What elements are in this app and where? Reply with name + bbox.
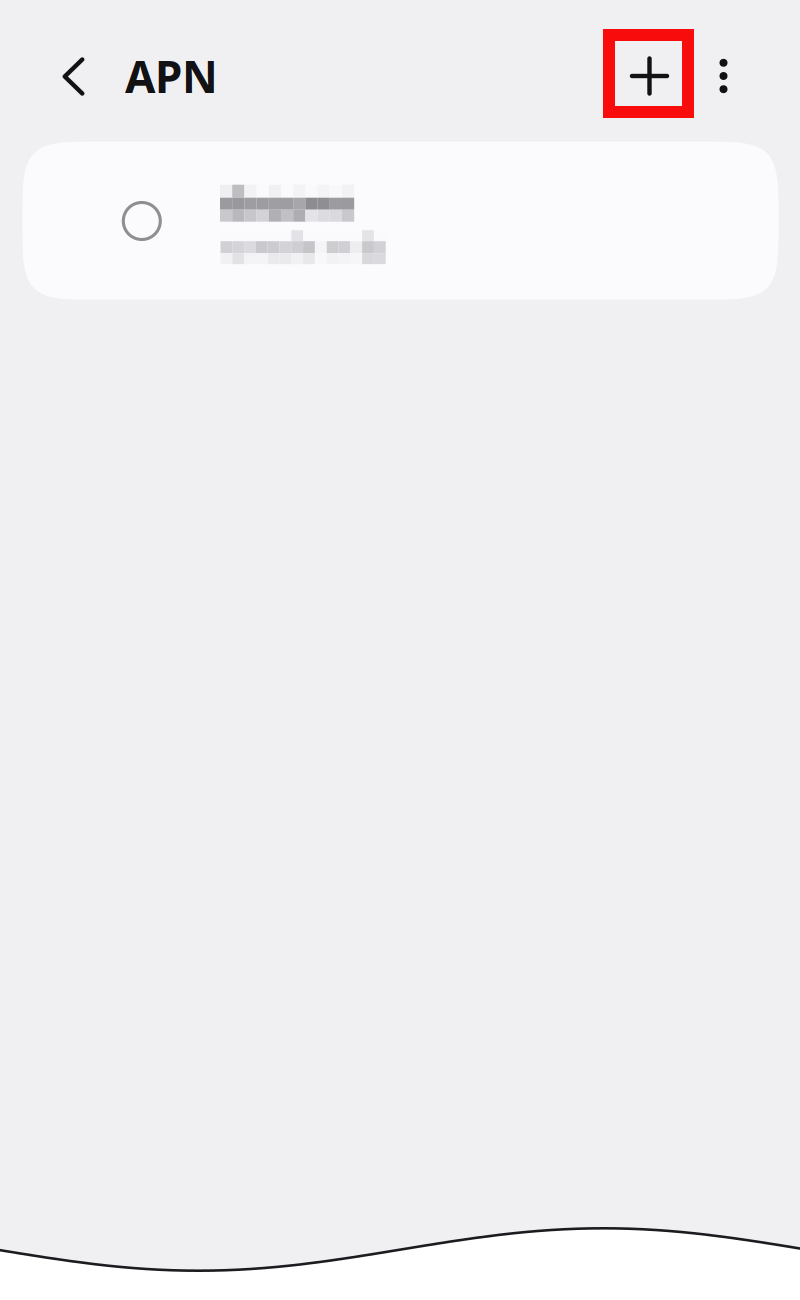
button[interactable]: Back bbox=[25, 28, 121, 124]
button[interactable]: APN profile bbox=[22, 142, 778, 300]
staticText: APN bbox=[125, 47, 218, 105]
button[interactable]: More options bbox=[694, 28, 752, 124]
button[interactable]: Add APN bbox=[603, 29, 694, 118]
